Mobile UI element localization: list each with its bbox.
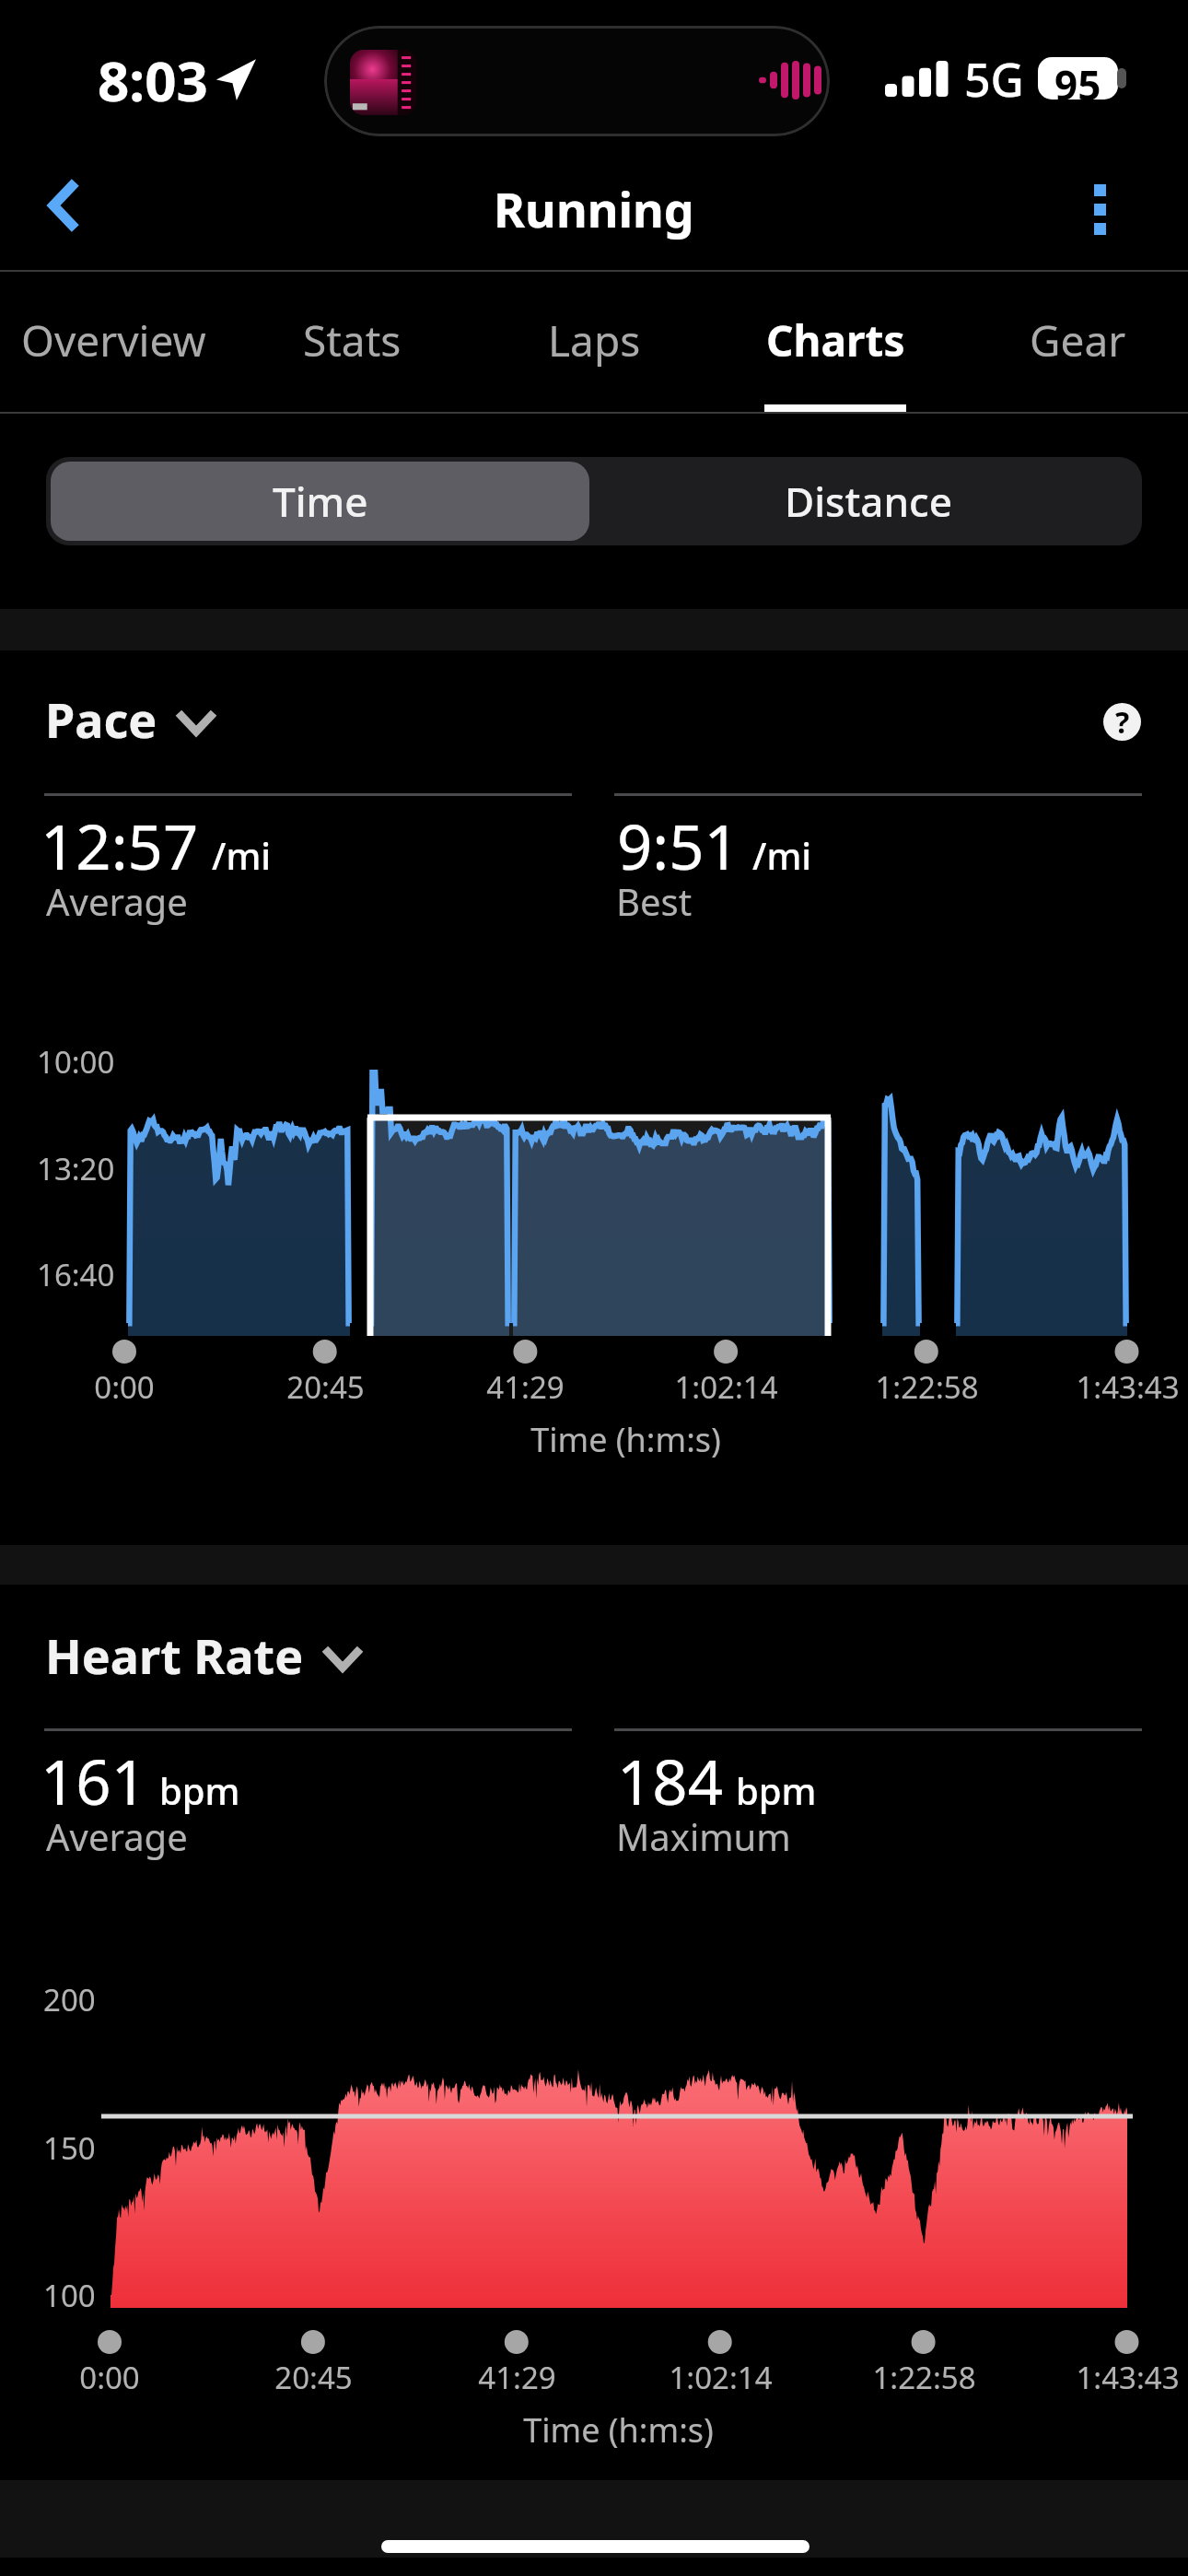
staticText: ? bbox=[1115, 703, 1130, 740]
staticText: 16:40 bbox=[37, 1254, 115, 1295]
button[interactable]: Back bbox=[0, 161, 122, 270]
staticText: 184 bbox=[617, 1739, 723, 1822]
staticText: bpm bbox=[736, 1765, 817, 1815]
staticText: 1:22:58 bbox=[875, 1366, 979, 1408]
staticText: 12:57 bbox=[41, 803, 199, 887]
staticText: Gear bbox=[1030, 311, 1126, 369]
staticText: 161 bbox=[41, 1739, 146, 1822]
button[interactable]: Stats bbox=[232, 272, 472, 411]
staticText: Maximum bbox=[616, 1811, 791, 1861]
staticText: 20:45 bbox=[274, 2357, 353, 2398]
staticText: 13:20 bbox=[37, 1148, 115, 1189]
staticText: Stats bbox=[303, 311, 402, 369]
staticText: 9:51 bbox=[617, 803, 740, 887]
staticText: bpm bbox=[159, 1765, 240, 1815]
staticText: 150 bbox=[43, 2127, 96, 2169]
staticText: 95 bbox=[1054, 57, 1101, 100]
staticText: 1:02:14 bbox=[669, 2357, 773, 2398]
staticText: Heart Rate bbox=[45, 1622, 304, 1688]
staticText: 20:45 bbox=[286, 1366, 365, 1408]
button[interactable]: Laps bbox=[474, 272, 714, 411]
button[interactable]: Distance bbox=[594, 457, 1142, 545]
staticText: Charts bbox=[766, 311, 905, 369]
button[interactable]: Pace bbox=[45, 677, 215, 760]
staticText: Time (h:m:s) bbox=[530, 1417, 721, 1462]
staticText: 0:00 bbox=[94, 1366, 155, 1408]
button[interactable]: Gear bbox=[958, 272, 1188, 411]
staticText: Overview bbox=[21, 311, 206, 369]
staticText: Distance bbox=[785, 474, 952, 529]
button[interactable]: More options bbox=[1061, 161, 1188, 270]
staticText: 41:29 bbox=[478, 2357, 556, 2398]
button[interactable]: Help bbox=[1083, 680, 1160, 763]
staticText: /mi bbox=[212, 830, 272, 880]
staticText: 1:22:58 bbox=[872, 2357, 976, 2398]
staticText: Time (h:m:s) bbox=[523, 2407, 714, 2453]
staticText: 8:03 bbox=[98, 42, 208, 118]
staticText: 5G bbox=[964, 48, 1024, 111]
staticText: 1:43:43 bbox=[1076, 1366, 1180, 1408]
staticText: 1:02:14 bbox=[674, 1366, 778, 1408]
button[interactable]: Time bbox=[51, 462, 589, 541]
staticText: 200 bbox=[43, 1979, 96, 2020]
staticText: Best bbox=[616, 876, 693, 926]
staticText: /mi bbox=[752, 830, 812, 880]
staticText: Average bbox=[46, 1811, 188, 1861]
staticText: 1:43:43 bbox=[1076, 2357, 1180, 2398]
staticText: Average bbox=[46, 876, 188, 926]
staticText: 10:00 bbox=[37, 1041, 115, 1083]
staticText: Pace bbox=[45, 686, 157, 752]
staticText: 0:00 bbox=[79, 2357, 140, 2398]
button[interactable]: Charts bbox=[716, 272, 955, 411]
staticText: 100 bbox=[43, 2275, 96, 2316]
staticText: 41:29 bbox=[486, 1366, 565, 1408]
button[interactable]: Heart Rate bbox=[45, 1613, 361, 1696]
button[interactable]: Overview bbox=[0, 272, 233, 411]
staticText: Time bbox=[273, 474, 368, 529]
staticText: Laps bbox=[548, 311, 641, 369]
staticText: Running bbox=[494, 176, 694, 241]
